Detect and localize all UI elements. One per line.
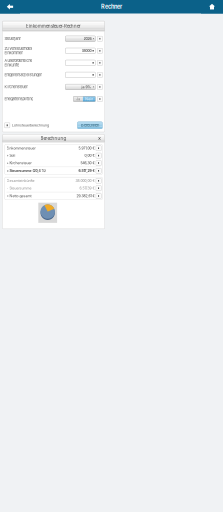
button[interactable]: Info: [96, 178, 101, 183]
staticText: Einkommensteuer: [7, 146, 36, 150]
button[interactable]: Info: [97, 96, 103, 102]
staticText: 6.517,29 €: [78, 169, 94, 173]
staticText: - Steuersumme: [7, 186, 32, 190]
staticText: 0,00 €: [84, 153, 94, 158]
button[interactable]: Lohnsteuerberechnung: [4, 123, 10, 128]
staticText: Rechner: [101, 3, 122, 10]
staticText: 29.382,61 €: [76, 194, 94, 198]
staticText: Ehegattensplitting: [4, 97, 33, 101]
button[interactable]: Info: [97, 48, 103, 53]
button[interactable]: Info: [97, 36, 103, 41]
staticText: Entgeltersatzleistungen: [4, 73, 42, 77]
staticText: ▾: [93, 85, 94, 88]
staticText: Außerordentliche Einkünfte: [4, 58, 32, 67]
staticText: 38000: [81, 49, 91, 53]
staticText: Ja: [76, 97, 80, 101]
button[interactable]: Info: [96, 168, 101, 173]
button[interactable]: Info: [96, 193, 101, 199]
button[interactable]: ja 9%: [65, 84, 95, 90]
button[interactable]: Info: [97, 84, 103, 89]
button[interactable]: Info: [96, 146, 101, 151]
staticText: + Kirchensteuer: [7, 161, 32, 165]
button[interactable]: 2026: [65, 36, 95, 41]
button[interactable]: Info: [97, 72, 103, 77]
button[interactable]: [65, 60, 95, 66]
staticText: Lohnsteuerberechnung: [12, 123, 49, 127]
staticText: 5.971,00 €: [78, 146, 94, 150]
button[interactable]: 38000: [65, 48, 95, 54]
staticText: 2026: [84, 36, 92, 41]
staticText: 38.000,00 €: [75, 179, 94, 183]
staticText: Berechnen: [81, 123, 99, 128]
staticText: Gesamteinkünfte: [7, 179, 35, 183]
staticText: = Netto gesamt: [7, 194, 32, 198]
button[interactable]: Info: [96, 186, 101, 191]
staticText: Einkommensteuer-Rechner: [26, 24, 81, 29]
button[interactable]: Info: [96, 160, 101, 166]
button[interactable]: Info: [97, 60, 103, 65]
button[interactable]: Nein: [83, 96, 95, 102]
staticText: + Soli: [7, 153, 16, 158]
staticText: 546,30 €: [80, 161, 94, 165]
button[interactable]: Info: [96, 153, 101, 158]
staticText: Zu versteuerndes Einkommen: [4, 46, 32, 55]
button[interactable]: Schließen: [97, 136, 102, 141]
button[interactable]: Ja: [73, 96, 83, 102]
staticText: ▾: [93, 37, 94, 40]
staticText: = Steuersumme (20,4 %): [7, 169, 46, 173]
staticText: ja 9%: [82, 85, 92, 89]
button[interactable]: [65, 72, 95, 78]
button[interactable]: Startseite: [201, 0, 223, 13]
staticText: Nein: [85, 97, 93, 101]
button[interactable]: Zurück: [0, 0, 20, 13]
staticText: Kirchensteuer: [4, 85, 27, 89]
button[interactable]: Berechnen: [77, 122, 102, 129]
staticText: 6.517,39 €: [79, 186, 94, 190]
staticText: Berechnung: [40, 136, 66, 141]
staticText: Steuerjahr: [4, 36, 20, 41]
